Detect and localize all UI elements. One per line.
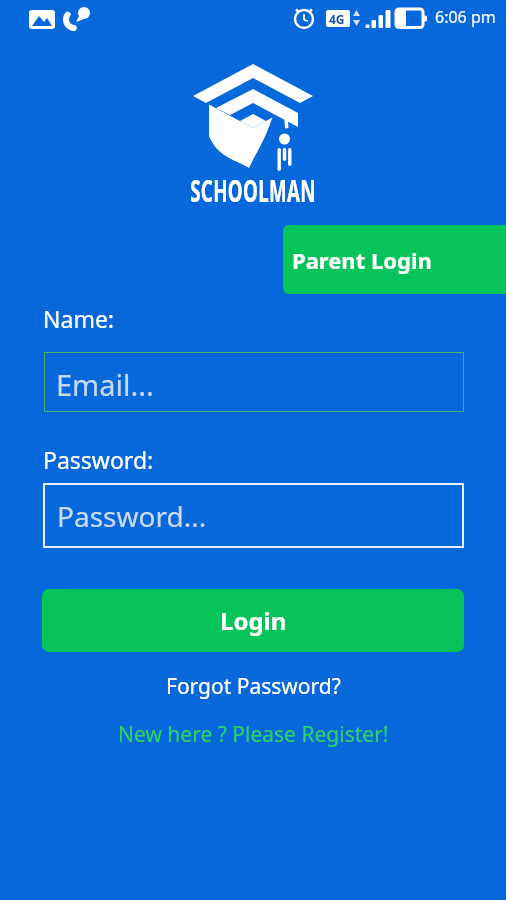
staticText: 4G — [329, 11, 345, 27]
staticText: Password: — [43, 444, 154, 475]
button[interactable]: Parent Login — [283, 225, 506, 294]
staticText: Email... — [56, 365, 154, 404]
staticText: New here ? Please Register! — [118, 720, 389, 749]
staticText: 6:06 pm — [435, 6, 496, 28]
staticText: Login — [220, 604, 287, 637]
staticText: Password... — [57, 497, 207, 535]
staticText: Forgot Password? — [166, 672, 341, 701]
button[interactable]: Email... — [44, 352, 464, 412]
staticText: SCHOOLMAN — [95, 170, 411, 211]
button[interactable]: Forgot Password? — [166, 672, 341, 701]
button[interactable]: New here ? Please Register! — [118, 720, 389, 749]
button[interactable]: Login — [42, 589, 464, 652]
button[interactable]: Password... — [43, 483, 464, 548]
staticText: Parent Login — [292, 245, 432, 275]
staticText: Name: — [43, 303, 115, 334]
